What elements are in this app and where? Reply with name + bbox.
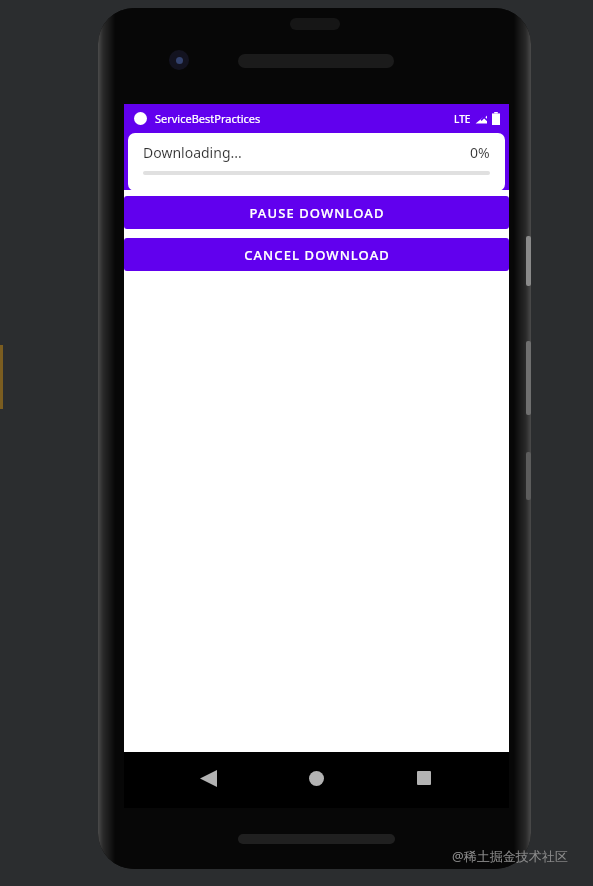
staticText: ServiceBestPractices bbox=[155, 111, 261, 126]
button[interactable]: Home bbox=[293, 755, 339, 801]
staticText: PAUSE DOWNLOAD bbox=[249, 204, 385, 222]
button[interactable]: Recent apps bbox=[401, 755, 447, 801]
button[interactable]: PAUSE DOWNLOAD bbox=[124, 196, 509, 229]
button[interactable]: CANCEL DOWNLOAD bbox=[124, 238, 509, 271]
staticText: Downloading... bbox=[143, 143, 242, 162]
staticText: CANCEL DOWNLOAD bbox=[244, 246, 390, 264]
staticText: LTE bbox=[454, 112, 471, 126]
button[interactable]: Back bbox=[185, 755, 231, 801]
staticText: 0% bbox=[470, 143, 490, 162]
staticText: @稀土掘金技术社区 bbox=[452, 847, 568, 865]
